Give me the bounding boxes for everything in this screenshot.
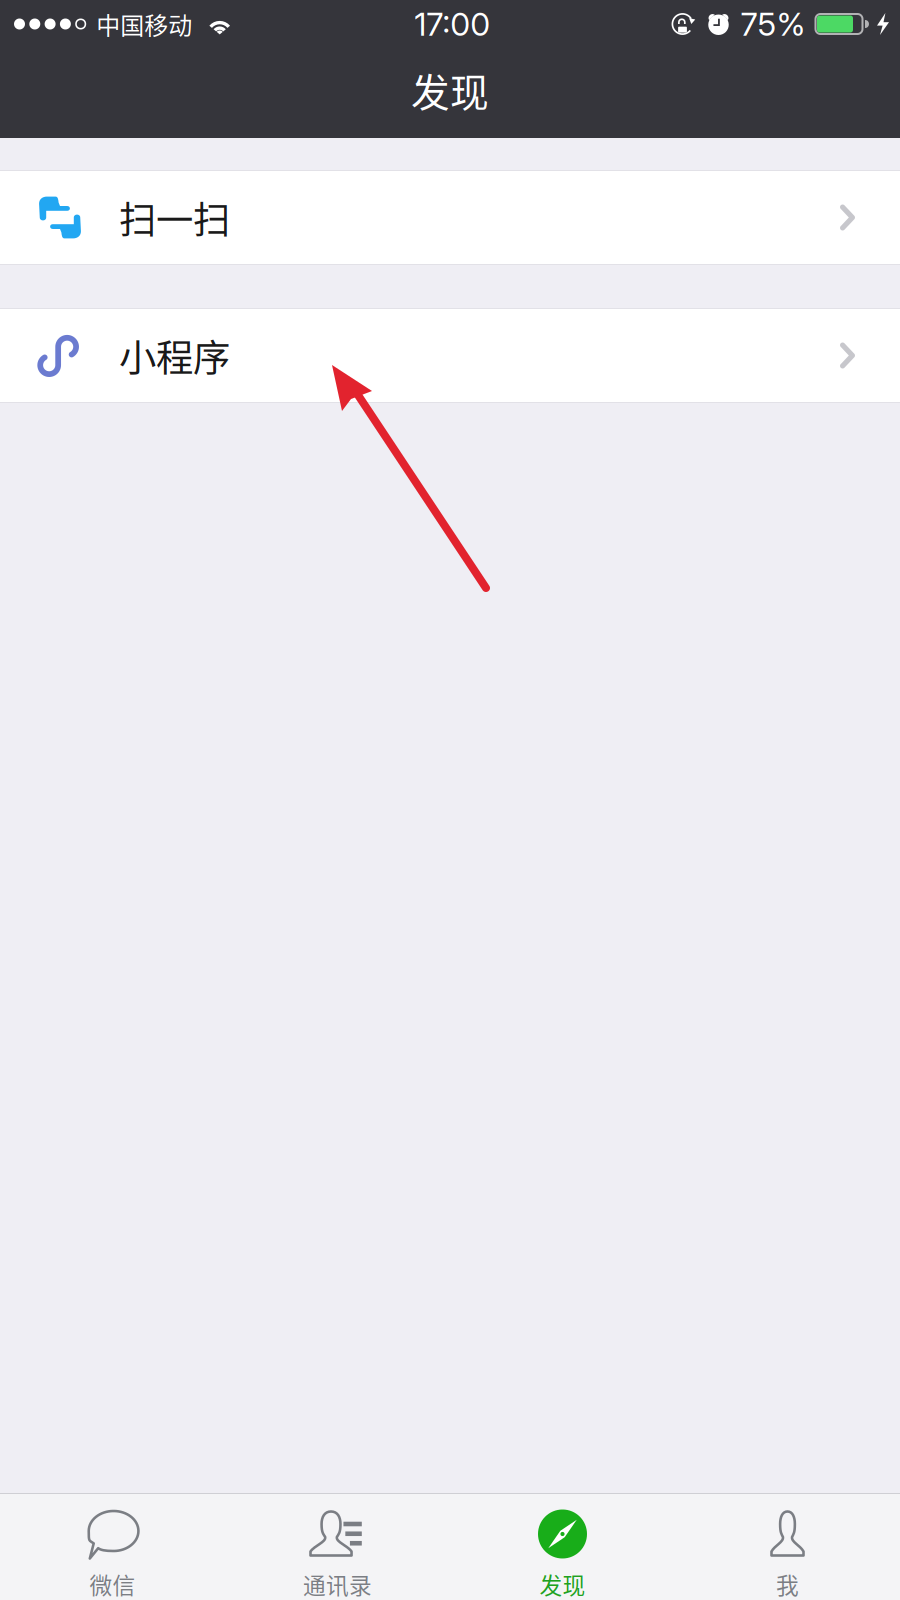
staticText: 扫一扫 [119, 190, 230, 245]
staticText: 发现 [411, 62, 489, 118]
staticText: 小程序 [119, 328, 230, 383]
staticText: 通讯录 [303, 1568, 372, 1600]
staticText: 中国移动 [96, 7, 192, 41]
staticText: 微信 [89, 1568, 135, 1600]
button[interactable]: 微信 [0, 1493, 225, 1600]
staticText: 17:00 [414, 5, 490, 43]
button[interactable]: 通讯录 [225, 1493, 450, 1600]
staticText: 我 [776, 1568, 799, 1600]
button[interactable]: 我 [675, 1493, 900, 1600]
staticText: 75% [740, 5, 805, 43]
staticText: 发现 [539, 1568, 585, 1600]
button[interactable]: 小程序 [0, 309, 900, 402]
button[interactable]: 发现 [450, 1493, 675, 1600]
button[interactable]: 扫一扫 [0, 171, 900, 264]
